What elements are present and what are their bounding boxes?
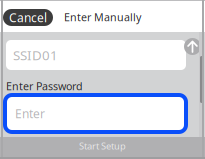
button[interactable]: Enter bbox=[5, 95, 186, 132]
staticText: Enter Password bbox=[6, 79, 83, 93]
staticText: Start Setup bbox=[79, 140, 126, 152]
button[interactable]: Start Setup bbox=[0, 137, 205, 159]
button[interactable]: Scroll up bbox=[184, 38, 201, 55]
staticText: Enter bbox=[15, 105, 45, 121]
button[interactable]: Cancel bbox=[3, 9, 53, 26]
button[interactable]: SSID01 bbox=[6, 40, 186, 70]
staticText: SSID01 bbox=[13, 46, 58, 64]
staticText: Cancel bbox=[9, 9, 47, 25]
staticText: Enter Manually bbox=[64, 10, 141, 24]
